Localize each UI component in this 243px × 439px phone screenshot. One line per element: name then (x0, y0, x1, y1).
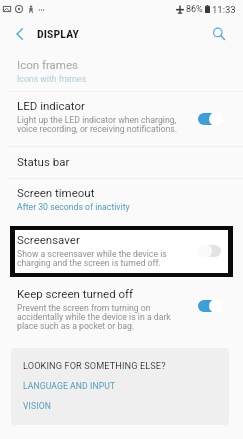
button[interactable]: Turn off (198, 112, 223, 126)
staticText: VISION (23, 401, 51, 411)
staticText: Show a screensaver while the device is (17, 250, 167, 259)
button[interactable]: Keep screen turned off (0, 277, 243, 335)
button[interactable]: Status bar (0, 147, 243, 178)
staticText: charging and the screen is turned off. (17, 259, 161, 268)
button[interactable]: Screen timeout (0, 179, 243, 226)
staticText: Light up the LED indicator when charging… (17, 116, 177, 125)
staticText: LANGUAGE AND INPUT (23, 381, 116, 391)
staticText: LED indicator (17, 100, 85, 112)
staticText: Screen timeout (17, 187, 95, 199)
staticText: Icon frames (17, 59, 78, 71)
button[interactable]: Screensaver (15, 230, 228, 273)
staticText: LOOKING FOR SOMETHING ELSE? (23, 360, 166, 371)
staticText: voice recording, or receiving notificati… (17, 125, 178, 134)
button[interactable]: VISION (23, 401, 219, 411)
staticText: Screensaver (17, 234, 80, 246)
button[interactable]: Turn on (198, 244, 223, 258)
staticText: Keep screen turned off (17, 288, 134, 300)
staticText: 11:33 (212, 4, 236, 15)
staticText: Prevent the screen from turning on (17, 304, 151, 313)
button[interactable]: Navigate up (3, 18, 35, 49)
staticText: After 30 seconds of inactivity (17, 203, 130, 212)
button[interactable]: LANGUAGE AND INPUT (23, 381, 219, 391)
button[interactable]: Turn off (198, 299, 223, 313)
button[interactable]: Icon frames (0, 49, 243, 91)
staticText: Status bar (17, 156, 70, 168)
button[interactable]: Search (203, 18, 234, 49)
staticText: DISPLAY (37, 27, 79, 41)
button[interactable]: LED indicator (0, 92, 243, 146)
staticText: Icons with frames (17, 75, 86, 84)
staticText: place such as a pocket or bag. (17, 322, 135, 331)
staticText: 86% (186, 4, 203, 15)
staticText: accidentally while the device is in a da… (17, 313, 171, 322)
